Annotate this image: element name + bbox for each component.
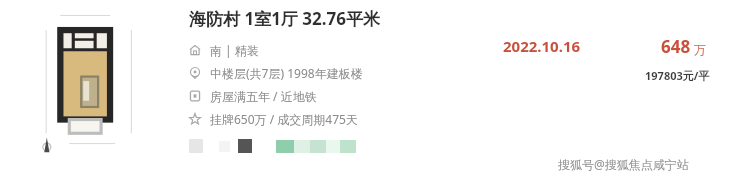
- staticText: 197803元/平: [645, 68, 710, 83]
- button[interactable]: Tags: [189, 84, 317, 107]
- button[interactable]: Listing: [189, 107, 358, 130]
- staticText: 海防村 1室1厅 32.76平米: [189, 7, 380, 30]
- button[interactable]: 648: [661, 35, 706, 58]
- staticText: 中楼层(共7层) 1998年建板楼: [210, 65, 363, 81]
- staticText: 搜狐号@搜狐焦点咸宁站: [558, 156, 689, 172]
- other: Tags: [189, 90, 201, 102]
- staticText: 房屋满五年 / 近地铁: [210, 88, 317, 104]
- button[interactable]: Floor: [189, 61, 363, 84]
- staticText: 2022.10.16: [503, 36, 581, 56]
- staticText: 648: [661, 35, 691, 58]
- other: Listing: [189, 113, 201, 125]
- other: Floor: [189, 67, 201, 79]
- button[interactable]: Orientation: [189, 38, 259, 61]
- other: Orientation: [189, 44, 201, 56]
- staticText: 挂牌650万 / 成交周期475天: [210, 111, 358, 127]
- staticText: 万: [694, 42, 706, 57]
- button[interactable]: 2022.10.16: [503, 36, 581, 56]
- other: Floor plan: [22, 6, 164, 178]
- staticText: 南 | 精装: [210, 42, 259, 58]
